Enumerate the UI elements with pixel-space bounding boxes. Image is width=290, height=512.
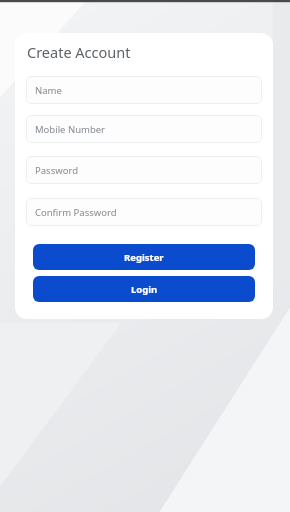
staticText: Create Account: [27, 42, 131, 62]
staticText: Password: [35, 164, 78, 177]
staticText: Login: [131, 283, 158, 296]
button[interactable]: Login: [33, 276, 255, 302]
staticText: Register: [124, 251, 164, 264]
button[interactable]: Name: [26, 76, 262, 104]
staticText: Mobile Number: [35, 123, 106, 136]
button[interactable]: Mobile Number: [26, 115, 262, 143]
button[interactable]: Confirm Password: [26, 198, 262, 226]
staticText: Name: [35, 84, 62, 97]
button[interactable]: Register: [33, 244, 255, 270]
button[interactable]: Password: [26, 156, 262, 184]
staticText: Confirm Password: [35, 206, 117, 219]
